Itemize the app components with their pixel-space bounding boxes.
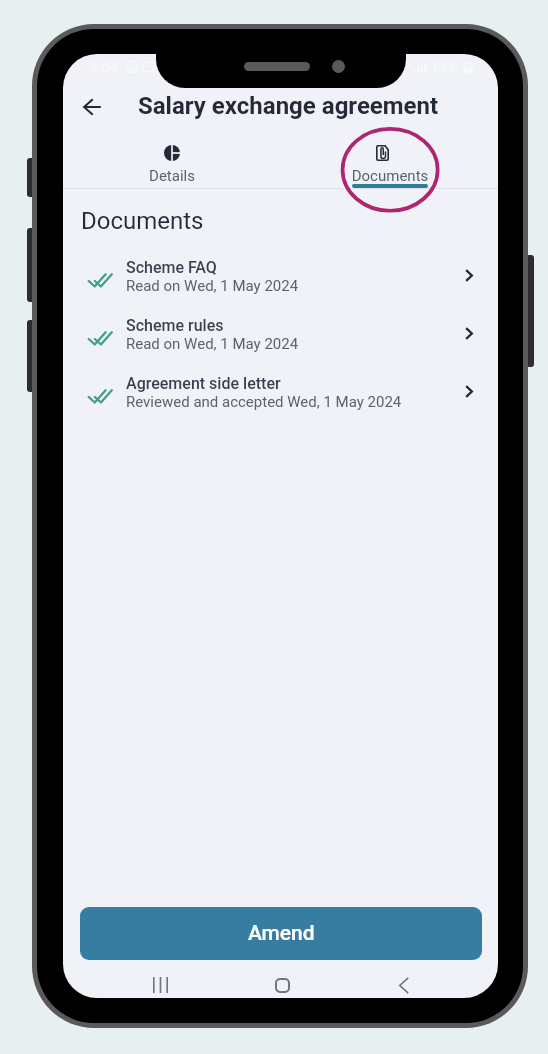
button[interactable]: Amend [80, 907, 482, 960]
staticText: Documents [281, 167, 498, 185]
staticText: Agreement side letter [126, 374, 281, 393]
button[interactable]: Scheme FAQ [63, 253, 498, 311]
staticText: Read on Wed, 1 May 2024 [126, 277, 299, 295]
button[interactable]: Documents [281, 136, 498, 188]
button[interactable]: Scheme rules [63, 311, 498, 369]
button[interactable]: Recents [137, 965, 183, 998]
staticText: Reviewed and accepted Wed, 1 May 2024 [126, 393, 402, 411]
staticText: Scheme FAQ [126, 258, 217, 277]
button[interactable]: Agreement side letter [63, 369, 498, 427]
button[interactable]: Details [63, 136, 281, 188]
staticText: Salary exchange agreement [138, 92, 439, 120]
button[interactable]: Back [381, 965, 427, 998]
staticText: Amend [248, 921, 315, 946]
button[interactable]: Home [259, 965, 305, 998]
staticText: Scheme rules [126, 316, 224, 335]
staticText: Details [63, 167, 281, 185]
staticText: Documents [81, 207, 204, 235]
button[interactable]: Back [71, 86, 113, 128]
staticText: Read on Wed, 1 May 2024 [126, 335, 299, 353]
